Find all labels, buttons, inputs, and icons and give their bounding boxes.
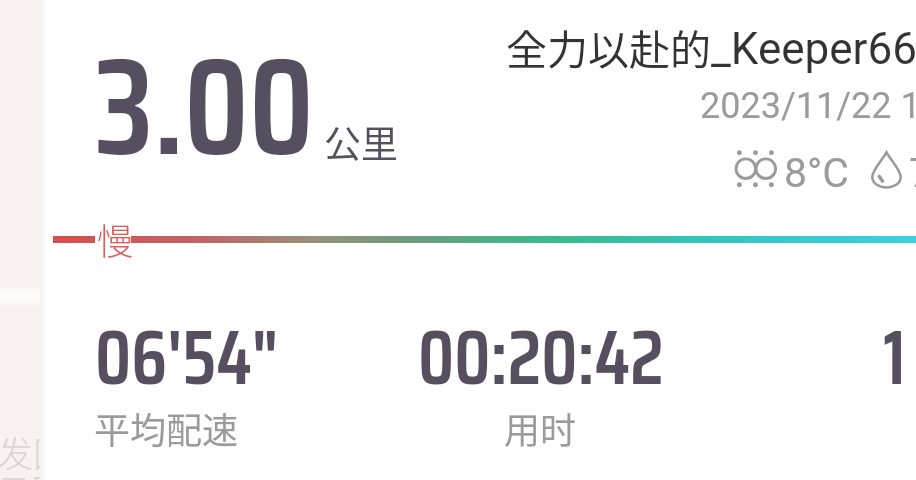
- button[interactable]: [412, 318, 712, 458]
- button[interactable]: 3.00: [45, 0, 916, 480]
- staticText: 平均配速: [94, 402, 239, 454]
- staticText: _Keeper66: [711, 23, 916, 75]
- staticText: 00:20:42: [418, 298, 664, 418]
- staticText: 全力以赴的: [506, 17, 711, 76]
- button[interactable]: [89, 318, 389, 458]
- staticText: 公里: [324, 115, 398, 169]
- button[interactable]: 全力以赴的: [506, 17, 916, 76]
- staticText: 1: [883, 298, 906, 418]
- staticText: 2023/11/22 1: [700, 85, 916, 127]
- other: Weather: [736, 149, 776, 188]
- staticText: 8°C: [784, 149, 850, 197]
- staticText: 3.00: [95, 0, 314, 214]
- staticText: 06'54": [95, 298, 279, 418]
- staticText: 发区: [0, 426, 69, 477]
- staticText: 用时: [504, 402, 577, 454]
- staticText: 7: [909, 149, 916, 197]
- button[interactable]: [877, 318, 916, 458]
- staticText: 日医: [0, 464, 67, 480]
- staticText: 慢: [97, 213, 134, 265]
- other: Humidity: [872, 151, 901, 188]
